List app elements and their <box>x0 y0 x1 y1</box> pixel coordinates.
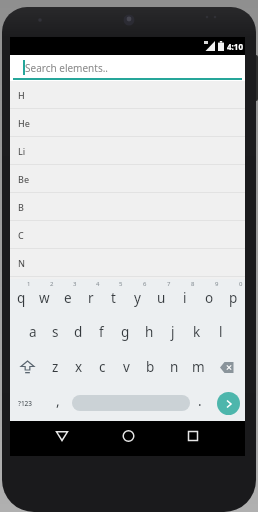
staticText: 2 <box>50 280 54 288</box>
button[interactable]: 4 <box>79 279 102 314</box>
button[interactable]: k <box>185 314 209 349</box>
staticText: 4:10 <box>227 41 243 52</box>
staticText: Search elements.. <box>25 61 109 75</box>
staticText: Li <box>18 145 26 157</box>
staticText: 9 <box>215 280 219 288</box>
button[interactable]: H <box>10 81 245 109</box>
button[interactable]: He <box>10 109 245 137</box>
staticText: 3 <box>73 280 77 288</box>
button[interactable]: 8 <box>173 279 197 314</box>
staticText: B <box>18 201 24 213</box>
staticText: N <box>18 257 25 269</box>
staticText: 0 <box>239 280 243 288</box>
button[interactable]: Be <box>10 165 245 193</box>
staticText: g <box>121 323 130 341</box>
button[interactable]: n <box>162 349 186 385</box>
button[interactable]: g <box>113 314 137 349</box>
staticText: t <box>111 289 116 307</box>
button[interactable]: m <box>186 349 210 385</box>
staticText: a <box>29 323 37 341</box>
staticText: n <box>170 358 179 376</box>
staticText: 7 <box>167 280 171 288</box>
button[interactable] <box>217 392 240 415</box>
staticText: v <box>123 358 130 376</box>
button[interactable]: f <box>90 314 113 349</box>
staticText: h <box>145 323 154 341</box>
staticText: j <box>171 323 175 341</box>
staticText: b <box>146 358 155 376</box>
staticText: 5 <box>119 280 123 288</box>
button[interactable]: 3 <box>56 279 79 314</box>
staticText: o <box>205 289 214 307</box>
button[interactable]: b <box>138 349 162 385</box>
staticText: e <box>64 289 72 307</box>
button[interactable]: 2 <box>33 279 56 314</box>
button[interactable]: 5 <box>102 279 125 314</box>
staticText: 6 <box>143 280 147 288</box>
button[interactable]: 7 <box>149 279 173 314</box>
staticText: He <box>18 117 30 129</box>
button[interactable]: 6 <box>125 279 149 314</box>
staticText: Be <box>18 173 30 185</box>
staticText: ?123 <box>18 399 33 408</box>
staticText: f <box>99 323 104 341</box>
button[interactable]: Li <box>10 137 245 165</box>
button[interactable] <box>72 395 190 411</box>
staticText: u <box>157 289 166 307</box>
staticText: w <box>39 289 50 307</box>
staticText: k <box>193 323 201 341</box>
staticText: m <box>192 358 205 376</box>
button[interactable]: 1 <box>10 279 33 314</box>
staticText: c <box>99 358 106 376</box>
staticText: i <box>183 289 187 307</box>
staticText: 4 <box>96 280 100 288</box>
button[interactable]: j <box>161 314 185 349</box>
button[interactable]: Search elements.. <box>10 55 245 81</box>
button[interactable]: h <box>137 314 161 349</box>
staticText: d <box>74 323 83 341</box>
staticText: s <box>52 323 59 341</box>
staticText: . <box>198 392 202 410</box>
button[interactable]: z <box>44 349 67 385</box>
button[interactable]: s <box>44 314 67 349</box>
staticText: x <box>75 358 83 376</box>
button[interactable]: c <box>90 349 114 385</box>
staticText: z <box>52 358 59 376</box>
staticText: r <box>88 289 94 307</box>
button[interactable]: v <box>114 349 138 385</box>
staticText: 1 <box>27 280 31 288</box>
staticText: C <box>18 229 24 241</box>
staticText: H <box>18 89 25 101</box>
button[interactable]: a <box>21 314 44 349</box>
staticText: y <box>134 289 141 307</box>
staticText: 8 <box>191 280 195 288</box>
button[interactable] <box>10 349 44 385</box>
staticText: q <box>17 289 26 307</box>
staticText: p <box>229 289 238 307</box>
button[interactable]: d <box>67 314 90 349</box>
button[interactable]: l <box>209 314 233 349</box>
button[interactable]: B <box>10 193 245 221</box>
button[interactable]: C <box>10 221 245 249</box>
button[interactable] <box>210 349 245 385</box>
button[interactable]: 9 <box>197 279 221 314</box>
button[interactable]: N <box>10 249 245 277</box>
staticText: , <box>56 392 60 410</box>
staticText: l <box>219 323 223 341</box>
button[interactable]: 0 <box>221 279 245 314</box>
button[interactable]: x <box>67 349 90 385</box>
